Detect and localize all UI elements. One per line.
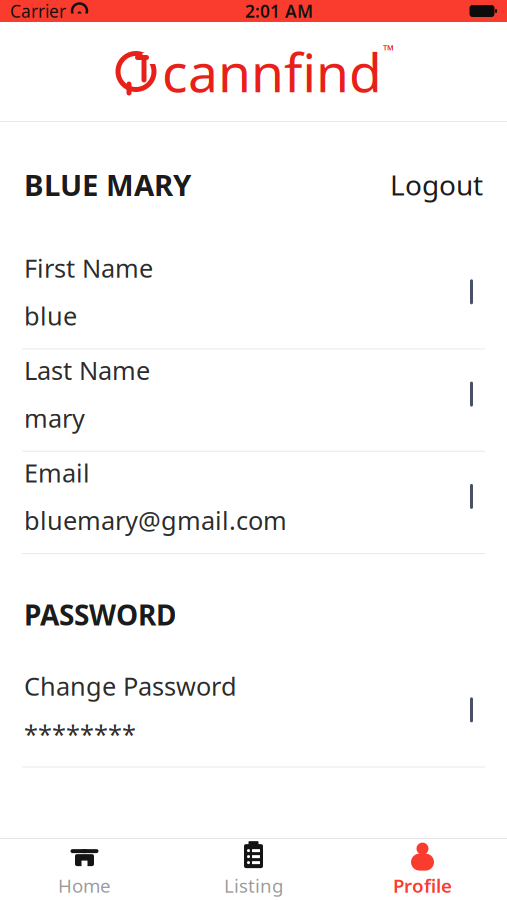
staticText: Carrier <box>10 0 66 22</box>
staticText: Listing <box>224 873 283 898</box>
staticText: Logout <box>390 166 483 203</box>
button[interactable]: Listing <box>169 833 338 900</box>
button[interactable]: First Name <box>0 247 507 349</box>
staticText: ******** <box>24 717 136 750</box>
staticText: Home <box>58 873 111 898</box>
staticText: mary <box>24 401 85 435</box>
button[interactable]: Logout <box>378 160 483 209</box>
staticText: blue <box>24 299 77 332</box>
staticText: Change Password <box>24 669 237 703</box>
staticText: 2:01 AM <box>245 0 313 22</box>
button[interactable]: Email <box>0 452 507 554</box>
button[interactable]: Profile <box>338 833 507 900</box>
staticText: bluemary@gmail.com <box>24 503 287 537</box>
staticText <box>66 0 71 22</box>
staticText: Email <box>24 456 90 489</box>
staticText: ™ <box>383 40 394 60</box>
button[interactable]: Change Password <box>0 665 507 767</box>
staticText: Last Name <box>24 353 150 387</box>
button[interactable]: Home <box>0 833 169 900</box>
staticText: PASSWORD <box>24 596 176 633</box>
staticText: Profile <box>393 873 452 898</box>
staticText: First Name <box>24 251 153 285</box>
staticText: cannfind <box>162 36 382 107</box>
staticText: BLUE MARY <box>24 165 191 204</box>
button[interactable]: Last Name <box>0 349 507 452</box>
